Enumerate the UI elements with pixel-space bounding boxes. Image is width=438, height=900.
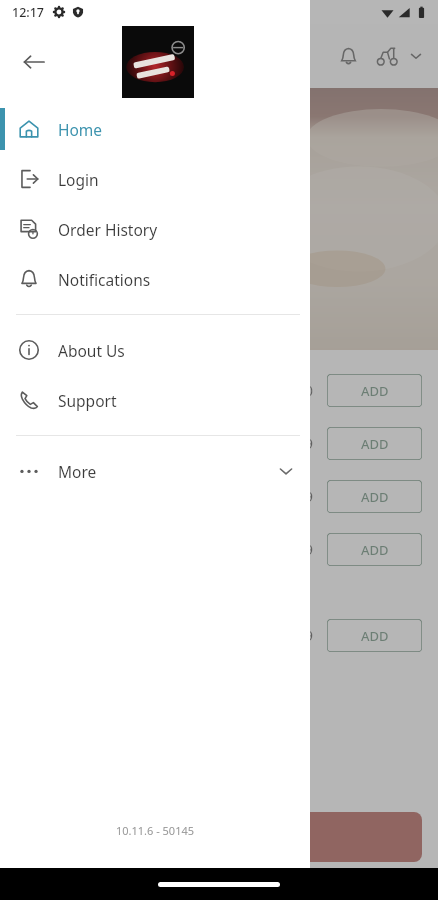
staticText: Login [58, 169, 99, 190]
staticText: 10.11.6 - 50145 [0, 823, 310, 838]
button[interactable]: Notifications [331, 39, 365, 73]
button[interactable]: About Us [0, 325, 310, 375]
button[interactable]: ADD [327, 480, 422, 513]
button[interactable]: Support [0, 375, 310, 425]
staticText: More [58, 461, 97, 482]
button[interactable]: ADD [327, 427, 422, 460]
button[interactable]: More [0, 446, 310, 496]
staticText: Support [58, 390, 117, 411]
staticText: ADD [361, 627, 389, 645]
button[interactable]: Order History [0, 204, 310, 254]
staticText: 12:17 [12, 4, 45, 21]
button[interactable]: ADD [327, 619, 422, 652]
staticText: About Us [58, 340, 125, 361]
button[interactable]: Rockin Pizza logo [122, 26, 194, 98]
staticText: ₹99 [289, 487, 314, 506]
button[interactable]: Back [10, 38, 58, 86]
staticText: ₹99 [289, 434, 314, 453]
staticText: ₹99 [289, 540, 314, 559]
button[interactable]: Login [0, 154, 310, 204]
button[interactable] [16, 812, 422, 862]
staticText: Order History [58, 219, 158, 240]
staticText: ADD [361, 382, 389, 400]
staticText: ₹50 [289, 381, 314, 400]
staticText: Notifications [58, 269, 151, 290]
staticText: ADD [361, 488, 389, 506]
button[interactable]: Notifications [0, 254, 310, 304]
staticText: Home [58, 119, 103, 140]
button[interactable]: Home [0, 104, 310, 154]
staticText: ₹99 [289, 626, 314, 645]
staticText: ADD [361, 435, 389, 453]
button[interactable]: ADD [327, 533, 422, 566]
staticText: ADD [361, 541, 389, 559]
button[interactable]: ADD [327, 374, 422, 407]
button[interactable]: Delivery mode [375, 44, 424, 68]
